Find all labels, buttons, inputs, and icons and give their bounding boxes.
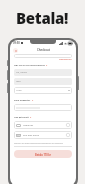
staticText: När vill du ha hemleverans?	[14, 64, 45, 67]
staticText: Betala!	[16, 8, 69, 28]
staticText: 12:00	[16, 89, 22, 92]
button[interactable]: Kort eller konto	[14, 131, 72, 139]
button[interactable]: Stäng	[13, 48, 18, 53]
staticText: *	[46, 64, 48, 67]
staticText: Pay	[17, 125, 21, 127]
staticText: Idag	[16, 80, 21, 83]
button[interactable]: Idag	[14, 78, 72, 85]
staticText: Kort eller konto	[23, 134, 39, 137]
button[interactable]: Betala 170 kr	[14, 150, 72, 158]
button[interactable]: Tid, datum	[14, 69, 72, 76]
staticText: 09:58	[13, 41, 20, 45]
staticText: Välj betalsätt	[14, 116, 29, 119]
staticText: Betala 170 kr	[35, 153, 51, 156]
staticText: Dina uppgifter	[14, 99, 31, 102]
staticText: Genom att lägga beställning godkänner du…	[14, 142, 63, 145]
staticText: Checkout	[37, 48, 50, 52]
button[interactable]	[14, 104, 72, 111]
staticText: Apple Pay	[23, 124, 34, 127]
staticText: Tid, datum	[16, 71, 28, 74]
button[interactable]: 12:00	[14, 87, 72, 94]
staticText: *	[30, 116, 32, 119]
staticText: Obligatorisk	[59, 58, 72, 61]
button[interactable]: Pay	[14, 121, 72, 129]
staticText: *	[32, 99, 34, 102]
